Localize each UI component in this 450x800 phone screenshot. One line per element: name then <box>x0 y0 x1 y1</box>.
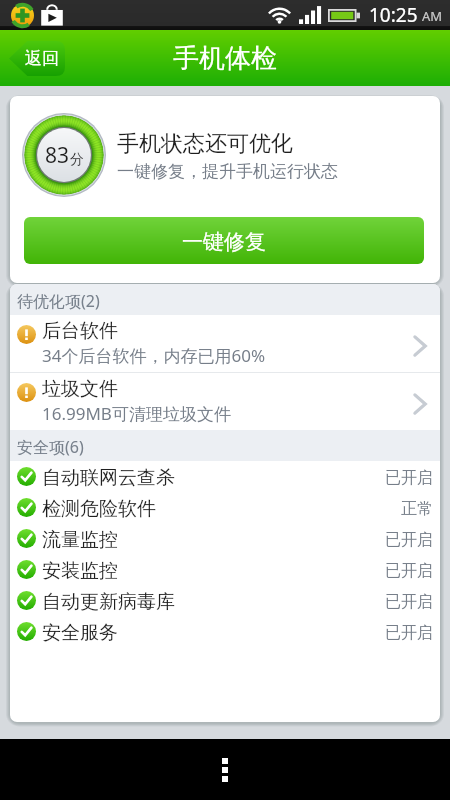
staticText: 一键修复 <box>182 229 266 255</box>
staticText: 自动联网云查杀 <box>42 466 175 490</box>
button[interactable]: More options <box>203 748 247 792</box>
button[interactable]: 后台软件 <box>10 315 440 372</box>
button[interactable]: 流量监控 <box>10 523 440 554</box>
button[interactable]: 安装监控 <box>10 554 440 585</box>
button[interactable]: 返回 <box>9 41 65 76</box>
staticText: 已开启 <box>385 561 433 581</box>
staticText: 一键修复，提升手机运行状态 <box>117 161 338 182</box>
staticText: 自动更新病毒库 <box>42 590 175 614</box>
button[interactable]: 自动更新病毒库 <box>10 585 440 616</box>
staticText: 安全项(6) <box>17 436 84 458</box>
button[interactable]: 自动联网云查杀 <box>10 461 440 492</box>
staticText: 检测危险软件 <box>42 497 156 521</box>
staticText: 分 <box>70 151 84 169</box>
staticText: 手机状态还可优化 <box>117 130 293 158</box>
staticText: 安全服务 <box>42 621 118 645</box>
staticText: 已开启 <box>385 530 433 550</box>
button[interactable]: 一键修复 <box>24 217 424 264</box>
staticText: 后台软件 <box>42 319 118 343</box>
staticText: 16.99MB可清理垃圾文件 <box>42 402 231 425</box>
button[interactable]: 检测危险软件 <box>10 492 440 523</box>
staticText: 正常 <box>401 499 433 519</box>
staticText: 手机体检 <box>173 42 277 75</box>
staticText: 流量监控 <box>42 528 118 552</box>
staticText: 安装监控 <box>42 559 118 583</box>
staticText: 已开启 <box>385 592 433 612</box>
staticText: 返回 <box>25 48 59 69</box>
staticText: AM <box>422 7 443 25</box>
staticText: 待优化项(2) <box>17 290 100 312</box>
staticText: 垃圾文件 <box>42 377 118 401</box>
staticText: 83 <box>45 141 70 170</box>
staticText: 34个后台软件，内存已用60% <box>42 344 266 367</box>
staticText: 已开启 <box>385 468 433 488</box>
staticText: 已开启 <box>385 623 433 643</box>
button[interactable]: 垃圾文件 <box>10 373 440 430</box>
staticText: 10:25 <box>369 2 418 28</box>
button[interactable]: 安全服务 <box>10 616 440 647</box>
